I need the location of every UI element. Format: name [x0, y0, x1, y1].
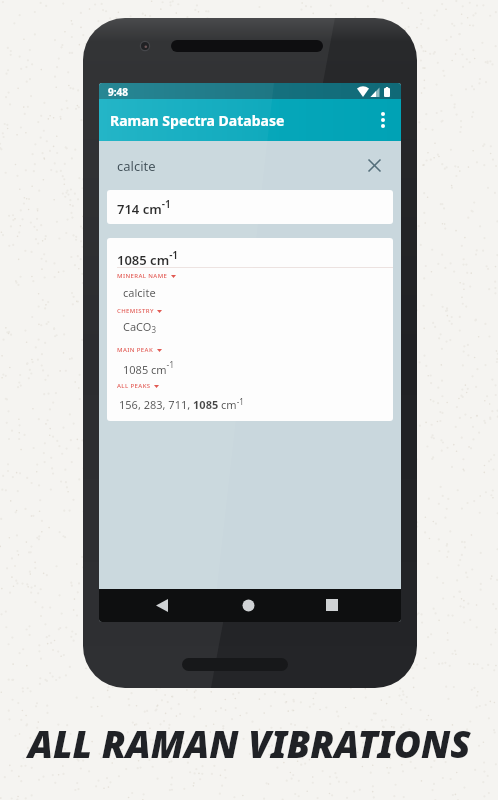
- button[interactable]: 714 cm-1: [107, 190, 393, 224]
- staticText: ALL PEAKS: [117, 382, 151, 390]
- staticText: 1085 cm-1: [117, 248, 179, 269]
- button[interactable]: [156, 599, 168, 612]
- button[interactable]: Raman Spectra Database: [99, 99, 401, 141]
- staticText: CaCO3: [123, 319, 157, 335]
- button[interactable]: calcite: [99, 141, 401, 190]
- staticText: MINERAL NAME: [117, 272, 168, 280]
- staticText: MAIN PEAK: [117, 346, 154, 354]
- staticText: Raman Spectra Database: [110, 111, 285, 130]
- staticText: 156, 283, 711, 1085 cm-1: [119, 396, 244, 412]
- staticText: ALL RAMAN VIBRATIONS: [28, 718, 471, 768]
- staticText: 1085 cm-1: [123, 359, 175, 377]
- button[interactable]: 1085 cm-1: [107, 238, 393, 421]
- button[interactable]: [381, 112, 385, 128]
- staticText: 9:48: [108, 85, 128, 99]
- staticText: 714 cm-1: [117, 197, 171, 218]
- button[interactable]: [242, 599, 255, 612]
- staticText: calcite: [117, 157, 156, 175]
- staticText: CHEMISTRY: [117, 307, 154, 315]
- staticText: calcite: [123, 285, 156, 300]
- button[interactable]: [368, 159, 381, 172]
